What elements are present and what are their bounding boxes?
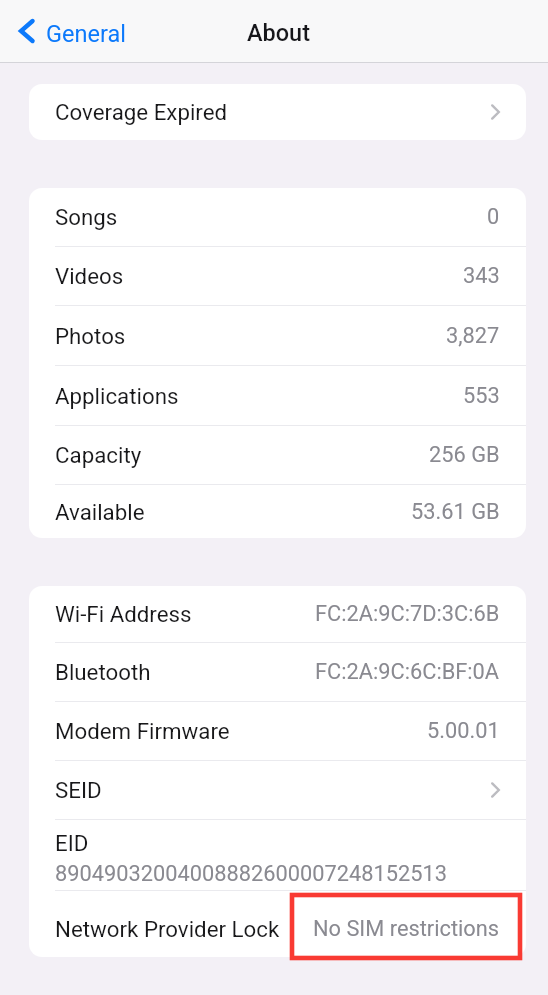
button[interactable]: Bluetooth bbox=[29, 643, 526, 701]
button[interactable]: EID bbox=[29, 820, 526, 890]
button[interactable]: Modem Firmware bbox=[29, 702, 526, 760]
button[interactable]: Wi-Fi Address bbox=[29, 586, 526, 642]
button[interactable]: Back to General bbox=[0, 0, 136, 62]
staticText: 553 bbox=[463, 383, 500, 409]
staticText: No SIM restrictions bbox=[313, 916, 500, 942]
staticText: 5.00.01 bbox=[427, 718, 500, 744]
button[interactable]: Videos bbox=[29, 247, 526, 305]
button[interactable]: No SIM restrictions bbox=[290, 896, 522, 957]
staticText: 256 GB bbox=[429, 442, 500, 468]
button[interactable]: Capacity bbox=[29, 426, 526, 484]
staticText: SEID bbox=[55, 777, 102, 803]
button[interactable]: Applications bbox=[29, 366, 526, 425]
staticText: Photos bbox=[55, 323, 126, 349]
staticText: Available bbox=[55, 499, 145, 525]
staticText: Bluetooth bbox=[55, 659, 151, 685]
staticText: 89049032004008882600007248152513 bbox=[55, 861, 448, 887]
staticText: 343 bbox=[463, 263, 500, 289]
staticText: Songs bbox=[55, 204, 118, 230]
staticText: Network Provider Lock bbox=[55, 916, 280, 942]
staticText: Videos bbox=[55, 263, 124, 289]
staticText: 0 bbox=[487, 204, 500, 230]
button[interactable]: Network Provider Lock bbox=[29, 891, 526, 957]
staticText: Capacity bbox=[55, 442, 142, 468]
button[interactable]: Songs bbox=[29, 188, 526, 246]
staticText: 3,827 bbox=[446, 323, 500, 349]
staticText: General bbox=[46, 20, 126, 48]
button[interactable]: Photos bbox=[29, 306, 526, 365]
staticText: FC:2A:9C:6C:BF:0A bbox=[315, 659, 500, 685]
button[interactable]: SEID bbox=[29, 761, 526, 819]
staticText: Modem Firmware bbox=[55, 718, 230, 744]
staticText: FC:2A:9C:7D:3C:6B bbox=[315, 601, 500, 627]
staticText: Wi-Fi Address bbox=[55, 601, 192, 627]
staticText: 53.61 GB bbox=[411, 499, 500, 525]
staticText: EID bbox=[55, 830, 89, 856]
staticText: Coverage Expired bbox=[55, 99, 228, 125]
button[interactable]: Coverage Expired bbox=[29, 84, 526, 140]
staticText: About bbox=[247, 19, 311, 47]
staticText: Applications bbox=[55, 383, 179, 409]
button[interactable]: Available bbox=[29, 485, 526, 538]
